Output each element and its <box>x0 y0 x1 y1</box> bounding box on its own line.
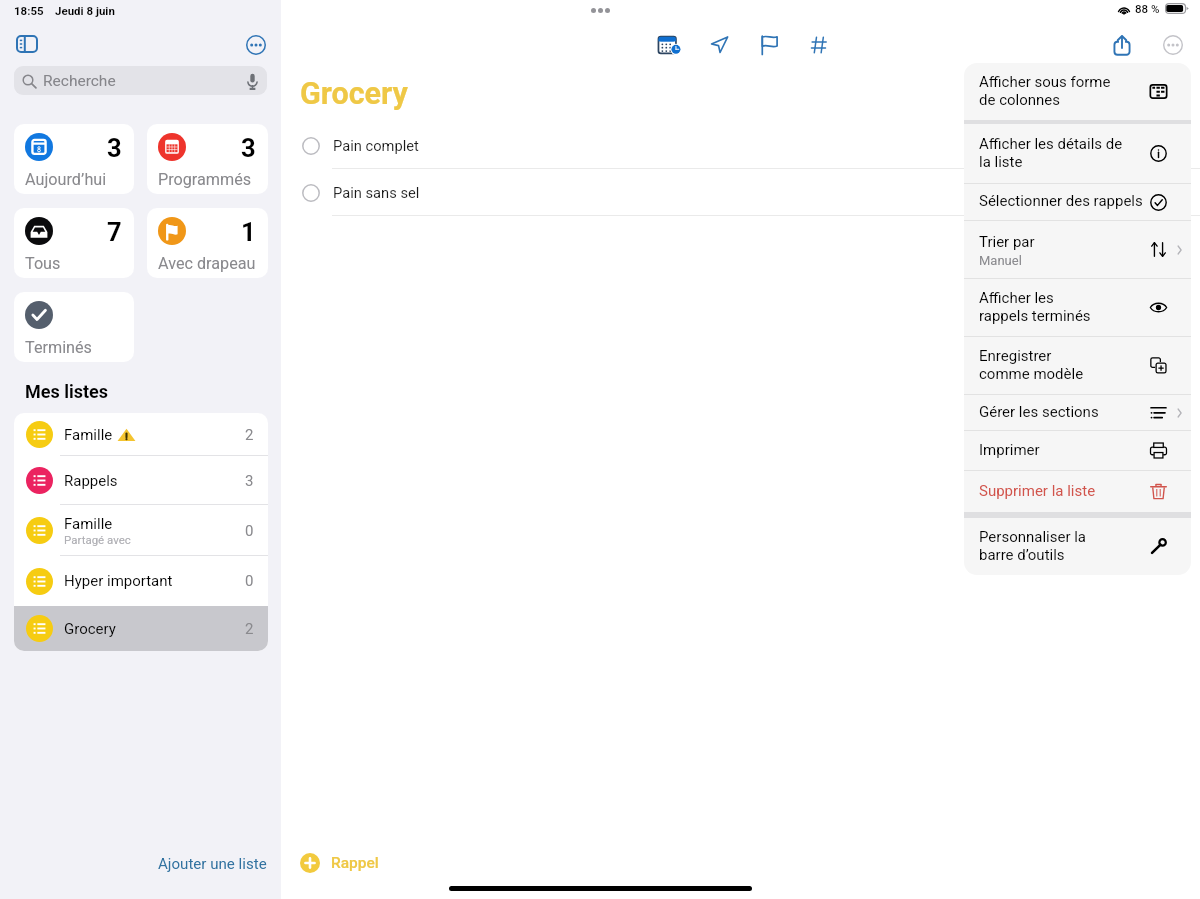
button[interactable]: 1 <box>147 208 268 278</box>
staticText: 0 <box>245 522 254 540</box>
button[interactable]: Grocery <box>14 606 268 651</box>
button[interactable]: 3 <box>14 124 134 194</box>
staticText: Personnaliser la <box>979 528 1087 546</box>
staticText: Aujourd’hui <box>25 170 107 189</box>
staticText: Manuel <box>979 253 1022 268</box>
staticText: 2 <box>245 426 254 444</box>
staticText: Pain sans sel <box>333 184 420 201</box>
button[interactable]: Rappels <box>14 456 268 505</box>
staticText: 1 <box>241 217 256 247</box>
button[interactable]: Ajouter une liste <box>154 851 271 877</box>
button[interactable]: Toggle sidebar <box>16 35 38 53</box>
staticText: 18:55 <box>14 4 44 17</box>
button[interactable]: Enregistrer <box>964 337 1191 394</box>
staticText: de colonnes <box>979 91 1061 109</box>
button[interactable]: Imprimer <box>964 431 1191 470</box>
staticText: Rappel <box>331 854 379 872</box>
button[interactable]: 3 <box>147 124 268 194</box>
button[interactable]: More options <box>1161 33 1185 57</box>
staticText: 2 <box>245 620 254 638</box>
staticText: Famille <box>64 426 113 444</box>
staticText: Ajouter une liste <box>158 855 267 873</box>
staticText: Mes listes <box>25 381 109 402</box>
staticText: 3 <box>241 133 256 163</box>
staticText: rappels terminés <box>979 307 1091 325</box>
staticText: Terminés <box>25 338 92 357</box>
button[interactable]: Sélectionner des rappels <box>964 184 1191 220</box>
button[interactable]: Afficher les détails de <box>964 124 1191 183</box>
button[interactable]: Rappel <box>300 853 379 873</box>
staticText: Programmés <box>158 170 252 189</box>
staticText: Partagé avec <box>64 533 134 546</box>
button[interactable]: Afficher les <box>964 279 1191 336</box>
staticText: Tous <box>25 254 61 273</box>
staticText: comme modèle <box>979 365 1084 383</box>
staticText: Rappels <box>64 472 118 490</box>
button[interactable]: Hyper important <box>14 556 268 606</box>
staticText: Supprimer la liste <box>979 482 1096 500</box>
staticText: Gérer les sections <box>979 403 1099 421</box>
button[interactable]: 7 <box>14 208 134 278</box>
staticText: 3 <box>107 133 122 163</box>
button[interactable]: Famille <box>14 505 268 556</box>
button[interactable]: Add tag <box>807 33 831 57</box>
button[interactable]: Flag <box>757 33 781 57</box>
staticText: 0 <box>245 572 254 590</box>
staticText: Afficher sous forme <box>979 73 1111 91</box>
button[interactable]: Recherche <box>14 66 267 95</box>
button[interactable]: Gérer les sections <box>964 395 1191 430</box>
button[interactable]: Supprimer la liste <box>964 471 1191 512</box>
button[interactable]: Afficher sous forme <box>964 63 1191 120</box>
button[interactable]: Personnaliser la <box>964 518 1191 575</box>
staticText: 7 <box>107 217 122 247</box>
button[interactable]: Terminés <box>14 292 134 362</box>
staticText: 3 <box>245 472 254 490</box>
button[interactable]: Add location <box>707 33 731 57</box>
button[interactable]: Trier par <box>964 221 1191 278</box>
staticText: Imprimer <box>979 441 1040 459</box>
staticText: Avec drapeau <box>158 254 256 273</box>
staticText: Enregistrer <box>979 347 1052 365</box>
staticText: Afficher les détails de <box>979 135 1123 153</box>
staticText: Afficher les <box>979 289 1054 307</box>
button[interactable]: Famille <box>14 413 268 456</box>
staticText: Recherche <box>43 72 116 90</box>
staticText: Trier par <box>979 233 1035 251</box>
staticText: Pain complet <box>333 137 419 154</box>
button[interactable]: Share <box>1110 33 1134 57</box>
button[interactable]: Pain sans sel <box>281 169 1200 216</box>
button[interactable]: More options <box>245 34 266 55</box>
staticText: Famille <box>64 515 113 533</box>
staticText: Grocery <box>64 620 116 638</box>
staticText: Grocery <box>300 76 408 112</box>
button[interactable]: Add date and time <box>657 33 681 57</box>
staticText: Sélectionner des rappels <box>979 192 1143 210</box>
staticText: Jeudi 8 juin <box>55 4 115 17</box>
staticText: barre d’outils <box>979 546 1065 564</box>
button[interactable]: Pain complet <box>281 122 1200 169</box>
staticText: Hyper important <box>64 572 173 590</box>
staticText: la liste <box>979 153 1023 171</box>
staticText: 88 % <box>1135 2 1160 15</box>
